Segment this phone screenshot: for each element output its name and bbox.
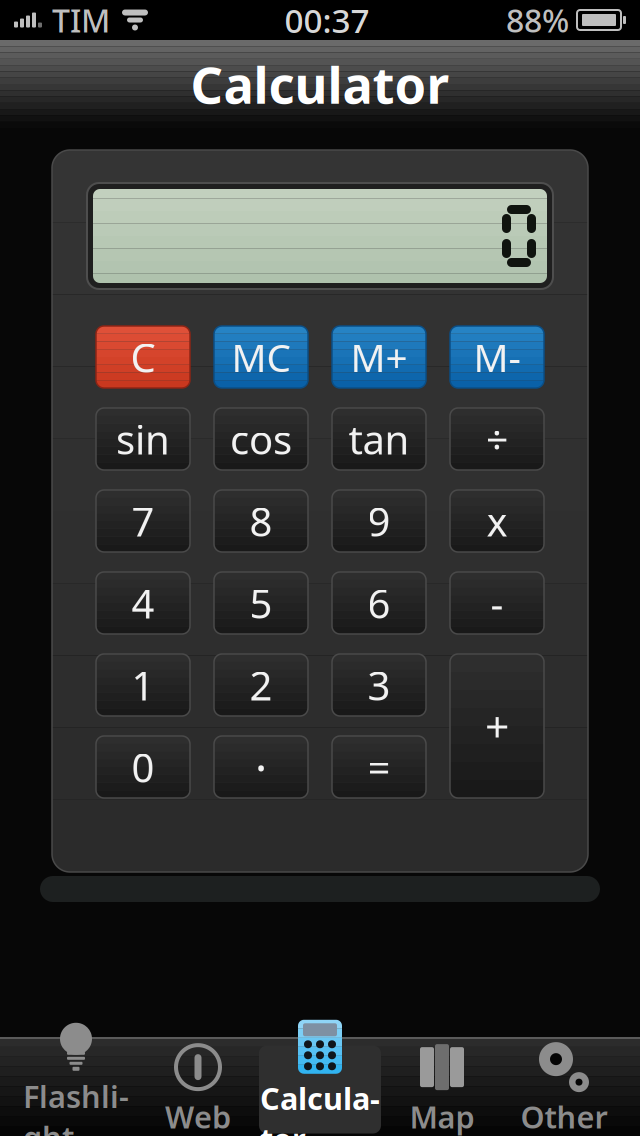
staticText: - xyxy=(490,576,503,629)
staticText: 7 xyxy=(131,494,154,547)
staticText: tan xyxy=(348,412,409,465)
button[interactable]: 2 xyxy=(214,654,308,716)
staticText: + xyxy=(485,698,509,754)
staticText: 2 xyxy=(249,658,272,711)
staticText: = xyxy=(367,740,390,793)
staticText: Map xyxy=(409,1096,474,1136)
button[interactable]: 7 xyxy=(96,490,190,552)
button[interactable]: 6 xyxy=(332,572,426,634)
button[interactable]: 9 xyxy=(332,490,426,552)
staticText: M- xyxy=(473,331,520,383)
button[interactable]: tan xyxy=(332,408,426,470)
button[interactable]: Other xyxy=(503,1045,625,1133)
staticText: Other xyxy=(520,1096,607,1136)
button[interactable]: cos xyxy=(214,408,308,470)
button[interactable]: M- xyxy=(450,326,544,388)
staticText: Flashlight xyxy=(23,1076,129,1136)
staticText: · xyxy=(255,737,267,797)
button[interactable]: - xyxy=(450,572,544,634)
staticText: Web xyxy=(165,1096,231,1136)
staticText: 8 xyxy=(249,494,272,547)
staticText: sin xyxy=(116,412,170,465)
staticText: 4 xyxy=(131,576,154,629)
staticText: x xyxy=(486,494,507,547)
button[interactable]: 1 xyxy=(96,654,190,716)
button[interactable]: = xyxy=(332,736,426,798)
staticText: M+ xyxy=(350,331,407,383)
staticText: 3 xyxy=(367,658,390,711)
staticText: 6 xyxy=(367,576,390,629)
button[interactable]: 5 xyxy=(214,572,308,634)
button[interactable]: 4 xyxy=(96,572,190,634)
button[interactable]: x xyxy=(450,490,544,552)
button[interactable]: Flashlight xyxy=(15,1045,137,1133)
staticText: TIM xyxy=(52,0,110,41)
staticText: Calculator xyxy=(190,50,449,118)
staticText: 5 xyxy=(249,576,272,629)
button[interactable]: Calculator xyxy=(259,1045,381,1133)
button[interactable]: C xyxy=(96,326,190,388)
button[interactable]: 0 xyxy=(96,736,190,798)
button[interactable]: sin xyxy=(96,408,190,470)
button[interactable]: + xyxy=(450,654,544,798)
button[interactable]: 3 xyxy=(332,654,426,716)
button[interactable]: MC xyxy=(214,326,308,388)
button[interactable]: Web xyxy=(137,1045,259,1133)
button[interactable]: 8 xyxy=(214,490,308,552)
button[interactable]: · xyxy=(214,736,308,798)
staticText: 00:37 xyxy=(284,0,369,42)
button[interactable]: Map xyxy=(381,1045,503,1133)
staticText: MC xyxy=(231,331,290,383)
staticText: 9 xyxy=(367,494,390,547)
button[interactable]: M+ xyxy=(332,326,426,388)
staticText: 88% xyxy=(506,0,569,41)
staticText: Calculator xyxy=(260,1078,380,1136)
staticText: 1 xyxy=(131,658,154,711)
staticText: 0 xyxy=(131,740,154,793)
staticText: ÷ xyxy=(485,412,508,465)
button[interactable]: ÷ xyxy=(450,408,544,470)
staticText: C xyxy=(130,330,155,383)
staticText: cos xyxy=(230,412,292,465)
